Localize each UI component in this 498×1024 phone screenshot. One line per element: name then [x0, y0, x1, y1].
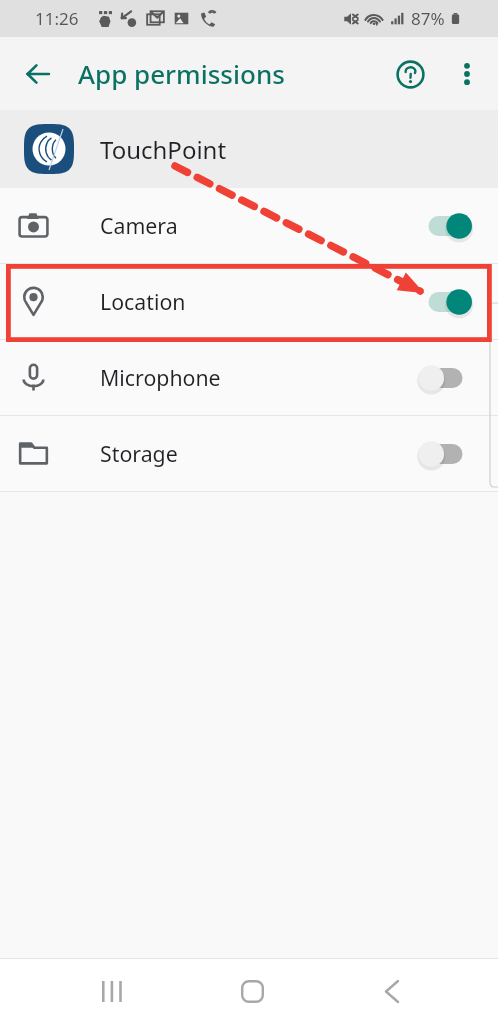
button[interactable]: Storage — [0, 416, 498, 491]
button[interactable]: Home — [225, 964, 279, 1018]
button[interactable]: TouchPoint — [0, 110, 498, 188]
staticText: Camera — [100, 211, 178, 240]
button[interactable]: More options — [444, 51, 490, 97]
button[interactable]: Location — [0, 264, 498, 339]
staticText: Location — [100, 287, 186, 316]
staticText: TouchPoint — [100, 133, 227, 166]
button[interactable]: Back — [365, 964, 419, 1018]
staticText: Storage — [100, 439, 178, 468]
button[interactable] — [422, 361, 476, 395]
button[interactable]: Camera — [0, 188, 498, 263]
staticText: 87% — [411, 7, 445, 30]
button[interactable] — [422, 209, 476, 243]
button[interactable]: Microphone — [0, 340, 498, 415]
button[interactable]: Back — [16, 52, 60, 96]
staticText: 11:26 — [35, 7, 79, 30]
button[interactable]: Help — [387, 51, 433, 97]
button[interactable] — [422, 285, 476, 319]
button[interactable]: Recents — [85, 964, 139, 1018]
staticText: Microphone — [100, 363, 221, 392]
button[interactable] — [422, 437, 476, 471]
staticText: App permissions — [78, 56, 285, 91]
